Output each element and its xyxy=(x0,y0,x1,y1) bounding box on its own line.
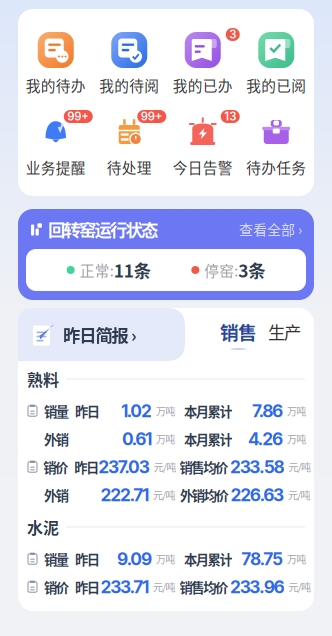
staticText: 元/吨 xyxy=(288,580,311,594)
staticText: 水泥 xyxy=(27,515,59,539)
staticText: 3 xyxy=(229,28,236,41)
staticText: 停窑: xyxy=(204,259,238,281)
button[interactable]: 99+ xyxy=(19,111,92,175)
staticText: 元/吨 xyxy=(288,460,311,474)
button[interactable]: 13 xyxy=(166,111,239,175)
button[interactable]: 我的待阅 xyxy=(92,29,166,93)
staticText: 78.75 xyxy=(241,548,283,569)
staticText: 昨日 xyxy=(74,457,99,477)
button[interactable]: 生产 xyxy=(268,319,301,350)
staticText: 昨日 xyxy=(75,549,100,569)
staticText: 1.02 xyxy=(121,400,152,421)
staticText: 万吨 xyxy=(287,552,306,566)
staticText: 万吨 xyxy=(287,404,306,418)
staticText: 待处理 xyxy=(107,156,152,178)
staticText: 昨日 xyxy=(75,577,100,597)
staticText: 业务提醒 xyxy=(26,156,86,178)
staticText: 生产 xyxy=(268,319,301,344)
staticText: 查看全部 › xyxy=(239,219,302,239)
staticText: 222.71 xyxy=(100,484,149,505)
staticText: 233.71 xyxy=(100,576,149,597)
staticText: 元/吨 xyxy=(153,488,176,502)
staticText: 外销 xyxy=(44,429,69,449)
staticText: 外销均价 xyxy=(180,485,228,505)
staticText: 233.96 xyxy=(230,576,284,597)
staticText: 销售均价 xyxy=(179,457,228,477)
button[interactable]: 3 xyxy=(166,29,239,93)
staticText: 233.58 xyxy=(230,456,284,477)
staticText: 销量 xyxy=(44,401,69,421)
staticText: 0.61 xyxy=(122,428,152,449)
staticText: 销价 xyxy=(43,457,68,477)
staticText: 昨日简报 › xyxy=(63,322,137,347)
button[interactable]: 昨日简报 › xyxy=(18,308,185,361)
staticText: 万吨 xyxy=(156,404,175,418)
staticText: 销量 xyxy=(44,549,69,569)
staticText: 正常: xyxy=(80,259,114,281)
staticText: 万吨 xyxy=(156,432,175,446)
staticText: 7.86 xyxy=(252,400,283,421)
staticText: 待办任务 xyxy=(246,156,306,178)
staticText: 今日告警 xyxy=(173,156,233,178)
button[interactable]: 待办任务 xyxy=(239,111,313,175)
staticText: 元/吨 xyxy=(288,488,311,502)
button[interactable]: 查看全部 › xyxy=(239,219,302,239)
staticText: 9.09 xyxy=(117,548,152,569)
staticText: 熟料 xyxy=(27,367,59,391)
staticText: 99+ xyxy=(141,110,163,123)
staticText: 本月累计 xyxy=(184,429,232,449)
staticText: 我的待办 xyxy=(26,74,86,96)
staticText: 万吨 xyxy=(287,432,306,446)
button[interactable]: 我的已阅 xyxy=(239,29,313,93)
staticText: 销售均价 xyxy=(179,577,228,597)
staticText: 元/吨 xyxy=(154,460,176,474)
staticText: 13 xyxy=(224,110,236,123)
staticText: 3条 xyxy=(238,257,265,283)
staticText: 我的已阅 xyxy=(246,74,306,96)
staticText: 外销 xyxy=(44,485,69,505)
staticText: 本月累计 xyxy=(184,401,232,421)
staticText: 237.03 xyxy=(98,456,150,477)
staticText: 销售 xyxy=(220,318,257,345)
staticText: 销价 xyxy=(44,577,69,597)
staticText: 226.63 xyxy=(230,484,284,505)
button[interactable]: 99+ xyxy=(92,111,166,175)
staticText: 元/吨 xyxy=(153,580,176,594)
staticText: 昨日 xyxy=(75,401,100,421)
staticText: 4.26 xyxy=(248,428,283,449)
staticText: 本月累计 xyxy=(184,549,232,569)
staticText: 万吨 xyxy=(156,552,175,566)
button[interactable]: 销售 xyxy=(220,318,257,351)
staticText: 11条 xyxy=(114,257,151,283)
staticText: 回转窑运行状态 xyxy=(48,216,158,242)
staticText: 我的已办 xyxy=(173,74,233,96)
staticText: 我的待阅 xyxy=(99,74,159,96)
button[interactable]: 我的待办 xyxy=(19,29,92,93)
staticText: 99+ xyxy=(67,110,89,123)
